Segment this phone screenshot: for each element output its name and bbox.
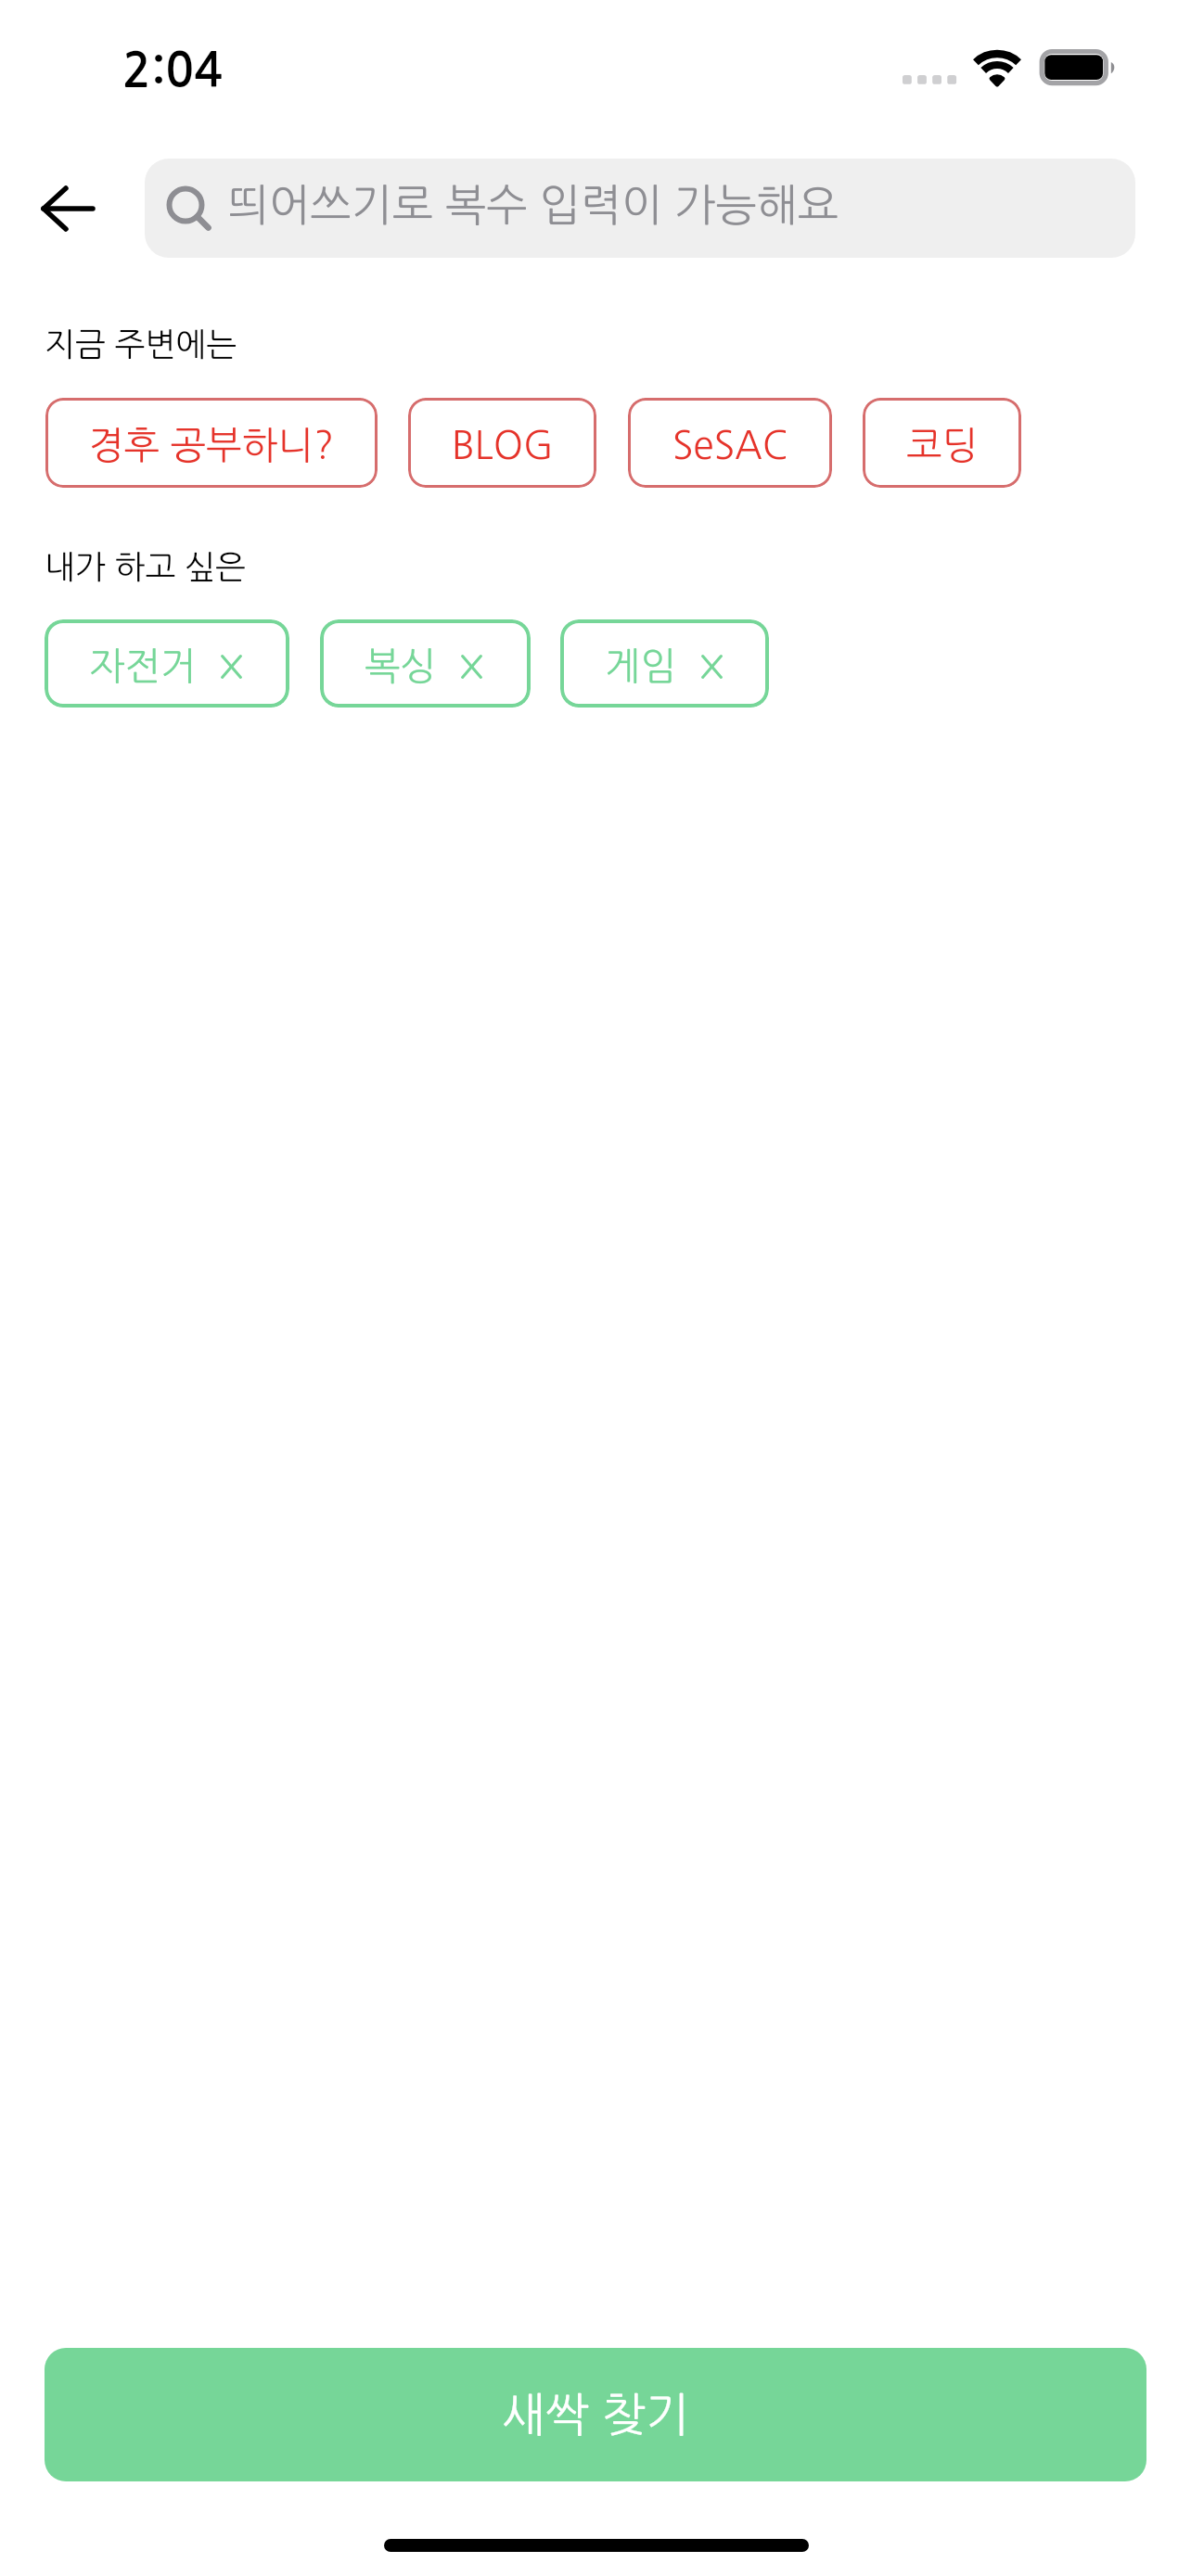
button[interactable]: 새싹 찾기: [45, 2348, 1146, 2481]
staticText: 내가 하고 싶은: [45, 551, 247, 583]
button[interactable]: 자전거: [45, 619, 289, 708]
button[interactable]: SeSAC: [628, 398, 832, 488]
button[interactable]: BLOG: [408, 398, 596, 488]
staticText: 새싹 찾기: [502, 2391, 689, 2438]
staticText: 띄어쓰기로 복수 입력이 가능해요: [228, 184, 839, 227]
button[interactable]: Remove 게임: [701, 655, 723, 679]
staticText: 복싱: [365, 647, 437, 685]
staticText: 게임: [605, 647, 677, 685]
button[interactable]: 코딩: [863, 398, 1021, 488]
button[interactable]: Back: [22, 172, 115, 246]
staticText: BLOG: [452, 427, 554, 465]
staticText: SeSAC: [672, 427, 788, 465]
button[interactable]: 경후 공부하니?: [45, 398, 378, 488]
button[interactable]: Search: [145, 159, 1135, 258]
staticText: 코딩: [906, 427, 979, 465]
staticText: 지금 주변에는: [45, 328, 237, 361]
button[interactable]: Remove 자전거: [221, 655, 242, 679]
staticText: 자전거: [89, 647, 197, 685]
button[interactable]: 복싱: [320, 619, 531, 708]
staticText: 경후 공부하니?: [88, 427, 335, 465]
staticText: 2:04: [122, 47, 224, 94]
button[interactable]: Remove 복싱: [461, 655, 482, 679]
button[interactable]: 게임: [560, 619, 769, 708]
